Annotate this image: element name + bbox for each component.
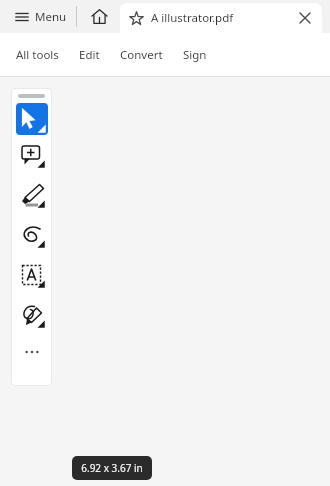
button[interactable]: Home — [84, 0, 114, 33]
button[interactable]: Highlight — [15, 175, 49, 215]
button[interactable]: Convert — [112, 33, 171, 76]
staticText: All tools — [16, 47, 59, 63]
button[interactable]: Move toolbar — [18, 94, 45, 98]
staticText: Menu — [35, 9, 67, 25]
button[interactable]: Menu — [10, 0, 71, 33]
staticText: Sign — [183, 47, 207, 63]
button[interactable]: Add comment — [15, 135, 49, 175]
button[interactable]: Erase — [15, 215, 49, 255]
button[interactable]: More tools — [15, 335, 49, 369]
staticText: 6.92 x 3.67 in — [81, 461, 143, 475]
staticText: Convert — [120, 47, 163, 63]
button[interactable]: Edit — [71, 33, 108, 76]
button[interactable]: Fill and sign — [15, 295, 49, 335]
button[interactable]: All tools — [8, 33, 67, 76]
staticText: A illustrator.pdf — [151, 10, 234, 26]
button[interactable]: Select tool — [16, 103, 48, 135]
button[interactable]: Sign — [175, 33, 215, 76]
staticText: Edit — [79, 47, 100, 63]
button[interactable]: Select text — [15, 255, 49, 295]
button[interactable]: A illustrator.pdf — [120, 3, 322, 33]
button[interactable]: Close tab — [294, 7, 316, 29]
